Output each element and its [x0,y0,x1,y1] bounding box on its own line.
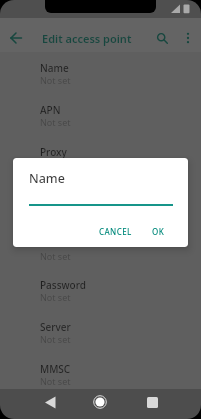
button[interactable] [0,270,201,312]
staticText: Server [40,320,71,334]
button[interactable] [29,188,173,206]
button[interactable]: OK [140,219,176,243]
staticText: Edit access point [42,31,132,46]
button[interactable] [0,54,201,96]
staticText: Proxy [40,145,67,159]
staticText: Not set [40,375,71,387]
button[interactable]: CANCEL [88,219,142,243]
staticText: Not set [40,74,71,86]
staticText: Name [40,61,69,75]
staticText: Password [40,278,86,292]
staticText: Not set [40,333,71,345]
staticText: Not set [40,250,71,262]
button[interactable] [150,26,174,50]
button[interactable] [0,354,201,396]
button[interactable] [176,26,200,50]
staticText: Name [29,170,65,187]
button[interactable] [4,26,28,50]
button[interactable] [0,138,201,180]
staticText: CANCEL [99,226,132,237]
staticText: OK [152,226,165,237]
staticText: Not set [40,291,71,303]
button[interactable] [0,312,201,354]
staticText: APN [40,103,61,117]
button[interactable] [140,390,164,414]
staticText: MMSC [40,362,71,376]
button[interactable] [88,390,112,414]
button[interactable] [0,96,201,138]
staticText: Not set [40,116,71,128]
button[interactable] [38,390,62,414]
